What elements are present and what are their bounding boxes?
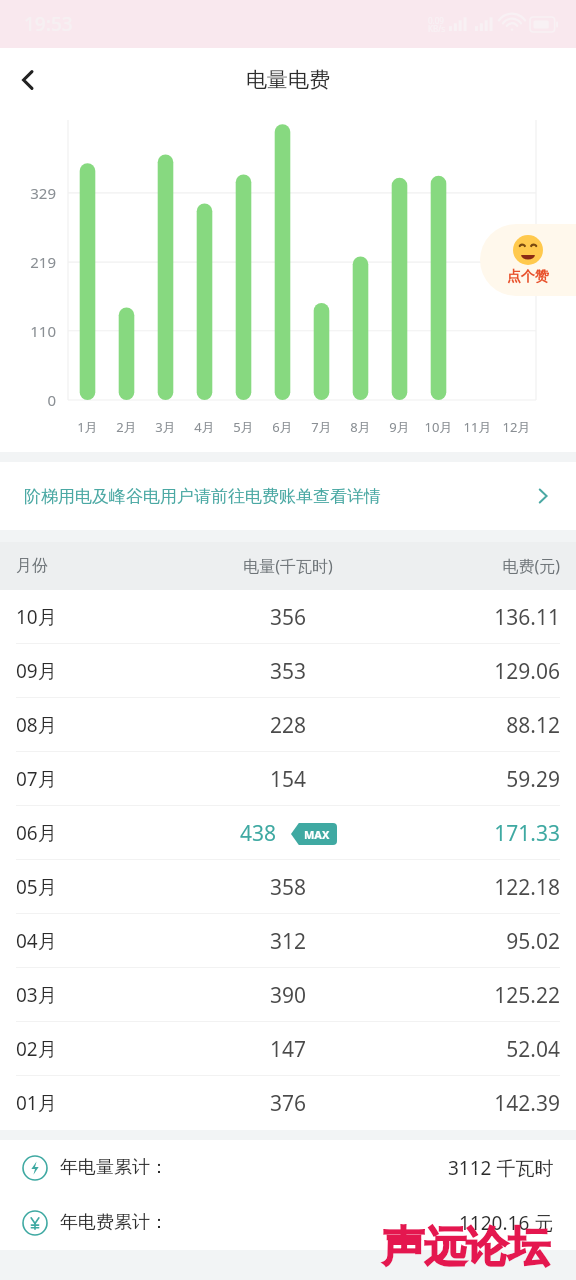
staticText: 07月 bbox=[16, 766, 181, 792]
staticText: 04月 bbox=[16, 928, 181, 954]
staticText: 电费(元) bbox=[395, 555, 560, 577]
staticText: 136.11 bbox=[395, 603, 560, 632]
staticText: 95.02 bbox=[395, 927, 560, 956]
button[interactable]: 05月 bbox=[0, 860, 576, 914]
staticText: 阶梯用电及峰谷电用户请前往电费账单查看详情 bbox=[24, 486, 534, 507]
staticText: 3112 千瓦时 bbox=[448, 1155, 554, 1181]
staticText: 03月 bbox=[16, 982, 181, 1008]
staticText: 8月 bbox=[341, 418, 380, 436]
staticText: 171.33 bbox=[395, 819, 560, 848]
staticText: 219 bbox=[0, 252, 56, 272]
staticText: 02月 bbox=[16, 1036, 181, 1062]
staticText: 110 bbox=[0, 321, 56, 341]
staticText: 5月 bbox=[224, 418, 263, 436]
staticText: 312 bbox=[270, 927, 307, 956]
staticText: 电量电费 bbox=[246, 67, 330, 93]
button[interactable]: 06月 bbox=[0, 806, 576, 860]
staticText: 09月 bbox=[16, 658, 181, 684]
staticText: 3月 bbox=[146, 418, 185, 436]
button[interactable]: 点个赞 bbox=[480, 224, 576, 296]
button[interactable]: 07月 bbox=[0, 752, 576, 806]
button[interactable]: 02月 bbox=[0, 1022, 576, 1076]
staticText: 228 bbox=[270, 711, 307, 740]
staticText: 声远论坛 bbox=[382, 1221, 550, 1274]
staticText: MAX bbox=[304, 827, 330, 842]
staticText: 1120.16 元 bbox=[459, 1210, 554, 1236]
button[interactable]: 阶梯用电及峰谷电用户请前往电费账单查看详情 bbox=[0, 462, 576, 530]
staticText: 376 bbox=[270, 1089, 307, 1118]
staticText: 358 bbox=[270, 873, 307, 902]
staticText: 142.39 bbox=[395, 1089, 560, 1118]
staticText: 年电费累计： bbox=[60, 1211, 168, 1234]
staticText: 9月 bbox=[380, 418, 419, 436]
staticText: 125.22 bbox=[395, 981, 560, 1010]
staticText: 10月 bbox=[419, 418, 458, 436]
button[interactable]: 10月 bbox=[0, 590, 576, 644]
staticText: 0.09 KB/s bbox=[428, 15, 445, 34]
staticText: 438 bbox=[240, 819, 277, 848]
staticText: 129.06 bbox=[395, 657, 560, 686]
button[interactable]: 01月 bbox=[0, 1076, 576, 1130]
staticText: 4月 bbox=[185, 418, 224, 436]
button[interactable]: Back bbox=[0, 52, 56, 108]
staticText: 06月 bbox=[16, 820, 181, 846]
staticText: 7月 bbox=[302, 418, 341, 436]
staticText: 52.04 bbox=[395, 1035, 560, 1064]
staticText: 59.29 bbox=[395, 765, 560, 794]
staticText: 2月 bbox=[107, 418, 146, 436]
button[interactable]: 08月 bbox=[0, 698, 576, 752]
staticText: 01月 bbox=[16, 1090, 181, 1116]
staticText: 329 bbox=[0, 183, 56, 203]
staticText: 353 bbox=[270, 657, 307, 686]
staticText: 0 bbox=[0, 390, 56, 410]
button[interactable]: 09月 bbox=[0, 644, 576, 698]
button[interactable]: 03月 bbox=[0, 968, 576, 1022]
staticText: 6月 bbox=[263, 418, 302, 436]
staticText: 05月 bbox=[16, 874, 181, 900]
staticText: 88.12 bbox=[395, 711, 560, 740]
button[interactable]: 04月 bbox=[0, 914, 576, 968]
staticText: 11月 bbox=[458, 418, 497, 436]
staticText: 电量(千瓦时) bbox=[181, 555, 395, 577]
staticText: 1月 bbox=[68, 418, 107, 436]
staticText: 12月 bbox=[497, 418, 536, 436]
staticText: 122.18 bbox=[395, 873, 560, 902]
staticText: 年电量累计： bbox=[60, 1156, 168, 1179]
staticText: 月份 bbox=[16, 556, 181, 576]
staticText: 147 bbox=[270, 1035, 307, 1064]
staticText: 点个赞 bbox=[507, 268, 549, 286]
staticText: 356 bbox=[270, 603, 307, 632]
staticText: 08月 bbox=[16, 712, 181, 738]
staticText: 390 bbox=[270, 981, 307, 1010]
staticText: 10月 bbox=[16, 604, 181, 630]
staticText: 154 bbox=[270, 765, 307, 794]
